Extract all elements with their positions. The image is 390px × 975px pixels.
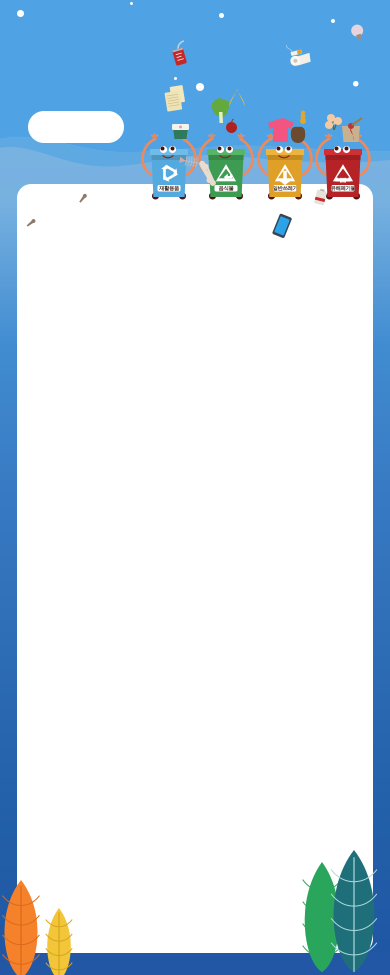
staticText: 유해폐기물 [330, 185, 355, 192]
staticText: 재활용품 [159, 185, 179, 192]
staticText: 음식물 [218, 185, 233, 192]
staticText: 일반쓰레기 [272, 185, 297, 192]
